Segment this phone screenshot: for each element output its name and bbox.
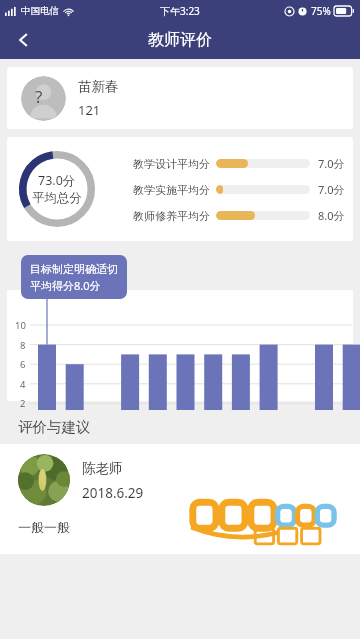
staticText: 10	[15, 319, 26, 332]
button[interactable]: 目标制定明确适切	[21, 255, 127, 299]
staticText: 8	[20, 339, 26, 352]
staticText: 教师修养	[278, 431, 324, 445]
staticText: ?	[35, 85, 43, 108]
staticText: 6	[20, 358, 26, 371]
staticText: 平均总分	[32, 190, 82, 206]
staticText: 7.0分	[318, 182, 345, 197]
staticText: 7.0分	[318, 156, 345, 171]
staticText: 教学实施平均分	[133, 183, 210, 197]
button[interactable]: 苗新春	[7, 67, 353, 129]
staticText: 8.0分	[318, 208, 345, 223]
staticText: 苗新春	[78, 78, 119, 95]
staticText: 4	[20, 378, 26, 391]
button[interactable]: Back	[6, 22, 42, 58]
staticText: 73.0分	[38, 172, 76, 189]
staticText: 2018.6.29	[82, 484, 144, 502]
staticText: 目标制定明确适切	[30, 262, 118, 276]
button[interactable]: 陈老师	[0, 444, 360, 554]
staticText: 0	[20, 417, 26, 430]
staticText: 121	[78, 101, 101, 119]
staticText: 教学设计平均分	[133, 157, 210, 171]
staticText: 教学设计	[55, 431, 101, 445]
staticText: 教学实施	[166, 431, 212, 445]
staticText: 下午3:23	[160, 4, 200, 18]
staticText: 一般一般	[18, 519, 70, 535]
staticText: 平均得分8.0分	[30, 278, 101, 293]
staticText: 中国电信	[21, 5, 59, 17]
staticText: 教师修养平均分	[133, 209, 210, 223]
staticText: 2	[20, 397, 26, 410]
staticText: 陈老师	[82, 460, 123, 477]
staticText: 教师评价	[148, 30, 212, 50]
staticText: 75%	[311, 4, 331, 18]
staticText: 评价与建议	[18, 418, 91, 436]
